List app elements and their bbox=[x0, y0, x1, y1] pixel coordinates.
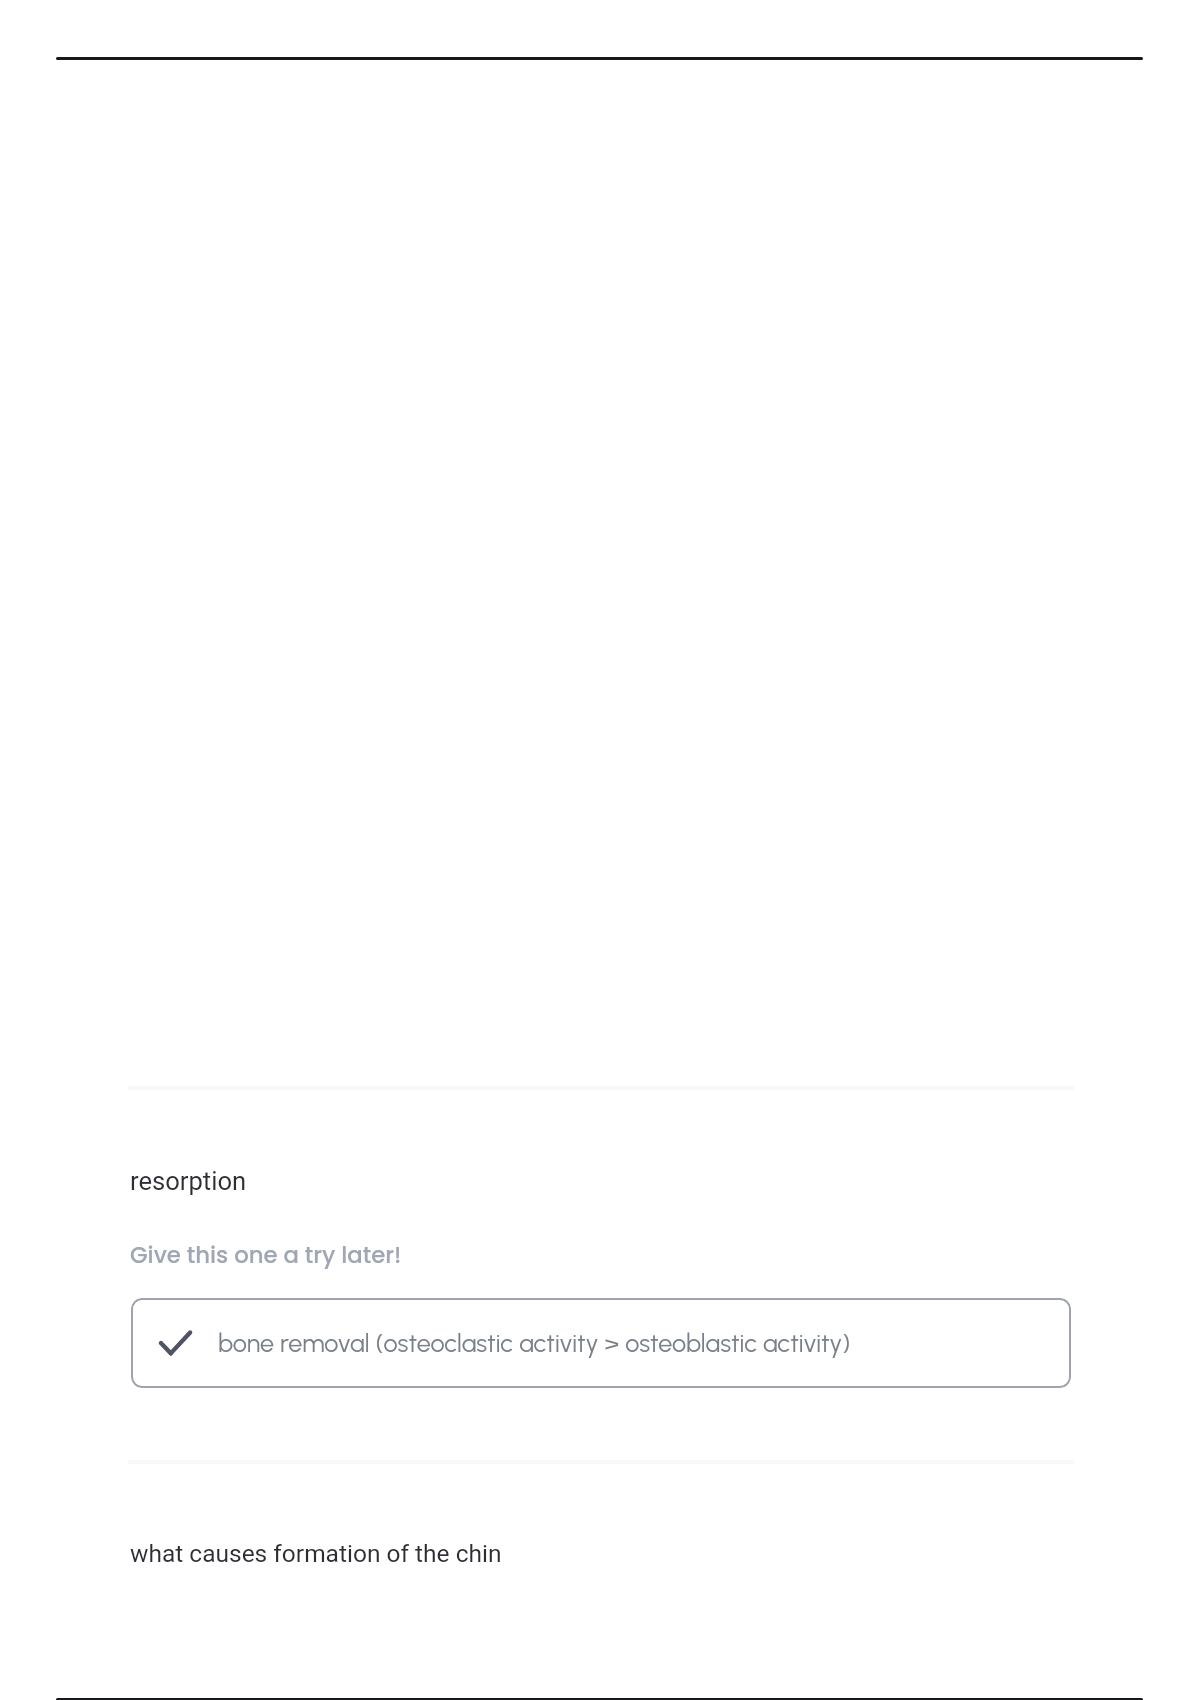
other: Correct answer bbox=[158, 1326, 192, 1360]
staticText: Give this one a try later! bbox=[130, 1239, 402, 1271]
staticText: bone removal (osteoclastic activity > os… bbox=[218, 1328, 851, 1358]
button[interactable]: Correct answer bbox=[131, 1298, 1071, 1388]
staticText: what causes formation of the chin bbox=[130, 1539, 502, 1568]
button[interactable]: what causes formation of the chin bbox=[0, 1464, 1200, 1694]
button[interactable]: resorption bbox=[0, 1090, 1200, 1460]
staticText: resorption bbox=[130, 1166, 247, 1196]
